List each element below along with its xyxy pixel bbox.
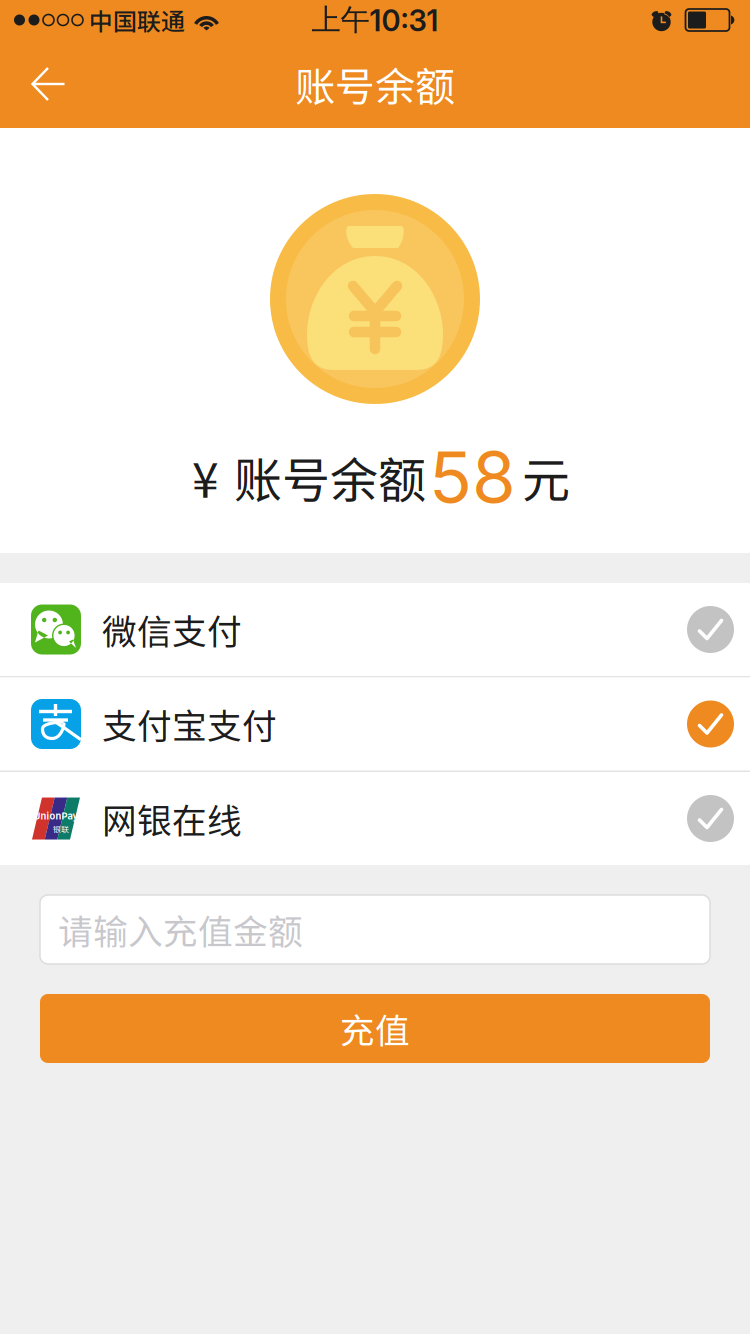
- staticText: 银联: [53, 823, 69, 834]
- staticText: 请输入充值金额: [58, 904, 303, 955]
- staticText: UnionPay: [33, 811, 78, 822]
- staticText: 微信支付: [102, 604, 242, 655]
- staticText: 元: [522, 442, 570, 511]
- staticText: 网银在线: [102, 793, 242, 844]
- staticText: 58: [429, 434, 516, 519]
- button[interactable]: 返回: [0, 40, 100, 128]
- button[interactable]: 支付宝支付: [0, 677, 750, 770]
- staticText: 充值: [340, 1003, 410, 1054]
- button[interactable]: 充值: [40, 994, 710, 1063]
- button[interactable]: UnionPay: [0, 772, 750, 865]
- button[interactable]: 微信支付: [0, 583, 750, 676]
- staticText: 上午10:31: [311, 1, 438, 38]
- staticText: 支付宝支付: [102, 699, 277, 749]
- staticText: 账号余额: [234, 442, 426, 511]
- staticText: ¥: [192, 442, 219, 511]
- staticText: 账号余额: [295, 55, 455, 113]
- staticText: 中国联通: [89, 3, 185, 37]
